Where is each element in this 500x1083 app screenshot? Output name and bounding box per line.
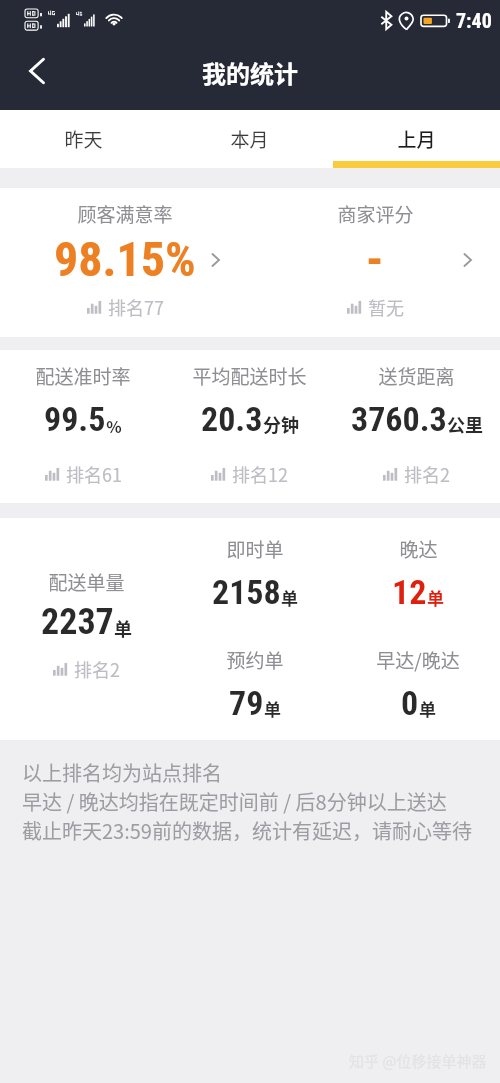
staticText: 送货距离 bbox=[378, 362, 455, 390]
button[interactable]: 本月 bbox=[166, 110, 333, 161]
staticText: 截止昨天23:59前的数据，统计有延迟，请耐心等待 bbox=[22, 816, 472, 845]
staticText: 单 bbox=[281, 585, 298, 610]
staticText: 配送单量 bbox=[48, 568, 125, 596]
staticText: 排名77 bbox=[108, 294, 164, 320]
staticText: 排名2 bbox=[404, 461, 450, 487]
staticText: 7:40 bbox=[456, 9, 492, 32]
button[interactable]: 预约单 bbox=[173, 629, 336, 740]
staticText: 2158 bbox=[212, 572, 281, 612]
button[interactable]: 平均配送时长 bbox=[166, 350, 333, 503]
staticText: 20.3 bbox=[201, 399, 263, 439]
staticText: 上月 bbox=[397, 125, 436, 153]
staticText: % bbox=[106, 414, 122, 437]
button[interactable]: Back bbox=[14, 51, 62, 99]
staticText: 79 bbox=[229, 683, 264, 723]
staticText: 排名12 bbox=[232, 461, 288, 487]
staticText: 98.15% bbox=[54, 231, 196, 287]
staticText: 我的统计 bbox=[202, 55, 298, 90]
button[interactable]: 商家评分 bbox=[250, 188, 500, 337]
button[interactable]: 即时单 bbox=[173, 518, 336, 629]
button[interactable]: 配送准时率 bbox=[0, 350, 166, 503]
staticText: 平均配送时长 bbox=[192, 362, 307, 390]
button[interactable]: 晚达 bbox=[336, 518, 500, 629]
staticText: 昨天 bbox=[64, 125, 103, 153]
staticText: 3760.3 bbox=[351, 399, 447, 439]
staticText: 分钟 bbox=[263, 411, 299, 437]
staticText: 99.5 bbox=[44, 399, 106, 439]
staticText: 晚达 bbox=[399, 535, 438, 563]
staticText: 公里 bbox=[447, 411, 483, 437]
staticText: 暂无 bbox=[368, 294, 404, 320]
staticText: 单 bbox=[264, 696, 281, 721]
staticText: 单 bbox=[114, 615, 132, 641]
staticText: - bbox=[366, 231, 384, 287]
button[interactable]: 上月 bbox=[333, 110, 500, 161]
staticText: 配送准时率 bbox=[35, 362, 131, 390]
staticText: 商家评分 bbox=[337, 200, 414, 228]
staticText: 单 bbox=[419, 696, 436, 721]
staticText: 即时单 bbox=[226, 535, 284, 563]
button[interactable]: 配送单量 bbox=[0, 518, 173, 740]
staticText: 早达 / 晚达均指在既定时间前 / 后8分钟以上送达 bbox=[22, 787, 447, 816]
staticText: 预约单 bbox=[226, 646, 284, 674]
staticText: 早达/晚达 bbox=[376, 646, 460, 674]
staticText: 2237 bbox=[41, 601, 114, 643]
staticText: 0 bbox=[401, 683, 419, 723]
staticText: 排名61 bbox=[66, 461, 122, 487]
staticText: 12 bbox=[392, 572, 427, 612]
button[interactable]: 昨天 bbox=[0, 110, 166, 161]
button[interactable]: 早达/晚达 bbox=[336, 629, 500, 740]
staticText: 本月 bbox=[230, 125, 269, 153]
button[interactable]: 送货距离 bbox=[333, 350, 500, 503]
staticText: 以上排名均为站点排名 bbox=[22, 758, 222, 787]
staticText: 知乎 @位移接单神器 bbox=[349, 1050, 487, 1072]
staticText: 单 bbox=[427, 585, 444, 610]
staticText: 排名2 bbox=[74, 656, 120, 682]
button[interactable]: 顾客满意率 bbox=[0, 188, 250, 337]
staticText: 顾客满意率 bbox=[77, 200, 173, 228]
